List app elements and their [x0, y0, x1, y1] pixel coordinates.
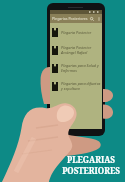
button[interactable]: Search — [88, 15, 95, 22]
button[interactable]: Plegaria Posterior Arcángel Rafael — [50, 41, 102, 59]
staticText: Plegaria Posterior Arcángel Rafael — [61, 45, 92, 55]
staticText: Plegarias para Salud y Enfermos — [61, 63, 99, 73]
staticText: POSTERIORES — [62, 165, 120, 176]
staticText: PLEGARIAS — [67, 154, 115, 165]
staticText: Plegaria Posterior — [61, 30, 92, 35]
staticText: Plegarias para difuntos y sepultura — [61, 81, 101, 91]
button[interactable]: More options — [95, 15, 102, 22]
button[interactable]: Plegarias para difuntos y sepultura — [50, 77, 102, 95]
button[interactable]: Plegaria Posterior — [50, 23, 102, 41]
button[interactable]: Plegarias para Salud y Enfermos — [50, 59, 102, 77]
staticText: Plegarias Posteriores — [52, 16, 88, 21]
button[interactable]: Plegarias Posteriores — [50, 14, 102, 23]
